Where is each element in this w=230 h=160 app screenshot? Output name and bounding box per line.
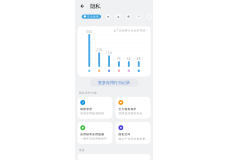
button[interactable]: 应用锁和应用隐藏 <box>77 122 112 144</box>
button[interactable]: Back <box>81 4 84 8</box>
staticText: 隐私 <box>90 3 100 9</box>
staticText: 管理应用敏感权限 <box>80 112 104 115</box>
button[interactable]: 安全检测 <box>82 15 101 19</box>
button[interactable]: More <box>146 14 151 19</box>
staticText: 隐私保护功能 <box>79 91 97 94</box>
staticText: 安全检测 <box>87 15 99 18</box>
staticText: 更多应用行为记录 <box>98 80 130 85</box>
button[interactable]: App lock <box>116 14 121 19</box>
staticText: 154 <box>106 51 112 55</box>
staticText: 权限管理 <box>80 107 92 111</box>
staticText: 560 <box>86 30 92 34</box>
staticText: 五大隐私保护 <box>118 107 136 111</box>
staticText: 保障您的隐私安全 <box>118 112 142 115</box>
staticText: 48 <box>137 57 141 61</box>
staticText: 隐私空间 <box>118 133 130 136</box>
staticText: 独立子空间存放私密数据 <box>118 137 151 140</box>
staticText: 应用锁和应用隐藏 <box>80 133 104 136</box>
button[interactable]: 权限管理 <box>77 97 112 119</box>
button[interactable]: 五大隐私保护 <box>115 97 151 119</box>
button[interactable]: 隐私空间 <box>115 122 151 144</box>
staticText: 近7日应用行为记录详情 › <box>113 29 147 32</box>
staticText: 一键开启应用锁保护 <box>80 137 107 140</box>
button[interactable]: 更多应用行为记录 <box>90 79 138 87</box>
staticText: 54 <box>127 57 131 61</box>
button[interactable]: Cloud backup <box>105 14 111 19</box>
staticText: 76 <box>117 57 121 61</box>
staticText: 218 <box>96 48 102 52</box>
button[interactable]: 近7日应用行为记录详情 › <box>113 29 147 32</box>
button[interactable]: Account <box>136 14 141 19</box>
button[interactable]: History <box>126 14 131 19</box>
staticText: 更多 <box>79 148 85 152</box>
